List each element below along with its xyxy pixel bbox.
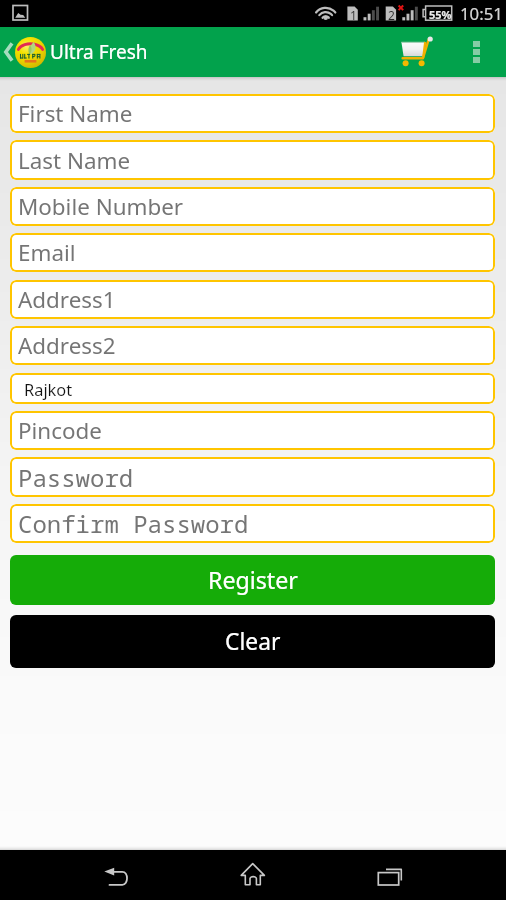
staticText: 10:51 xyxy=(460,2,503,25)
button[interactable]: Home xyxy=(168,850,337,900)
staticText: Mobile Number xyxy=(18,191,184,222)
button[interactable]: Register xyxy=(10,555,495,605)
button[interactable]: Address2 xyxy=(10,326,495,365)
staticText: Rajkot xyxy=(24,378,73,400)
staticText: Address1 xyxy=(18,284,116,315)
button[interactable]: Clear xyxy=(10,615,495,668)
staticText: Ultra Fresh xyxy=(50,39,148,65)
staticText: 1 xyxy=(350,7,357,23)
button[interactable]: More options xyxy=(447,27,506,77)
staticText: Clear xyxy=(225,626,281,657)
button[interactable]: Cart xyxy=(400,27,447,77)
button[interactable]: Recents xyxy=(337,850,506,900)
staticText: First Name xyxy=(18,98,133,129)
button[interactable]: Back xyxy=(0,850,168,900)
staticText: Password xyxy=(18,461,134,494)
other: Back xyxy=(0,27,15,77)
staticText: 55% xyxy=(429,7,452,22)
staticText: Last Name xyxy=(18,145,131,176)
button[interactable]: Password xyxy=(10,457,495,497)
staticText: Pincode xyxy=(18,415,102,446)
button[interactable]: Email xyxy=(10,233,495,272)
button[interactable]: Rajkot xyxy=(10,373,495,404)
staticText: Confirm Password xyxy=(18,507,249,540)
button[interactable]: Confirm Password xyxy=(10,504,495,543)
button[interactable]: Pincode xyxy=(10,411,495,450)
button[interactable]: Last Name xyxy=(10,140,495,180)
button[interactable]: First Name xyxy=(10,94,495,133)
button[interactable]: Mobile Number xyxy=(10,187,495,226)
staticText: Address2 xyxy=(18,330,116,361)
button[interactable]: Address1 xyxy=(10,280,495,319)
staticText: Register xyxy=(208,564,298,596)
staticText: Email xyxy=(18,237,76,268)
staticText: 2 xyxy=(388,7,395,23)
button[interactable]: Back xyxy=(0,27,148,77)
